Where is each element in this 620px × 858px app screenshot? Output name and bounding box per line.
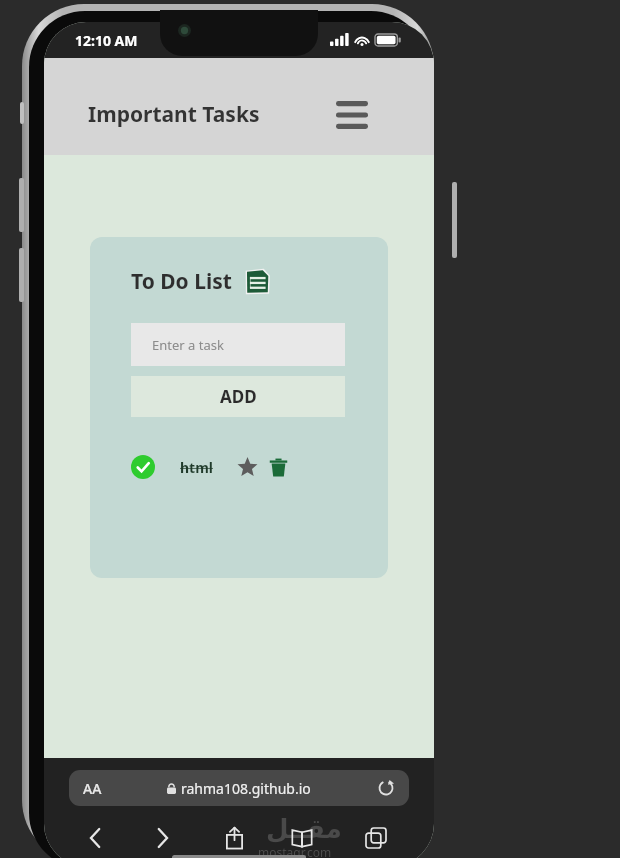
button[interactable]: ADD	[131, 376, 345, 417]
button[interactable]: Menu	[332, 95, 372, 135]
button[interactable]: Forward	[142, 818, 182, 858]
staticText: مقــل	[266, 814, 342, 844]
button[interactable]: Share	[214, 818, 254, 858]
staticText: Enter a task	[152, 336, 224, 354]
staticText: rahma108.github.io	[181, 779, 311, 798]
button[interactable]: Mark complete	[131, 455, 155, 479]
button[interactable]: Favourite	[235, 455, 259, 479]
staticText: mostaqr.com	[258, 844, 332, 858]
staticText: ADD	[220, 385, 257, 408]
staticText: 12:10 AM	[75, 31, 138, 50]
button[interactable]: Delete task	[266, 455, 290, 479]
button[interactable]: Enter a task	[131, 323, 345, 366]
button[interactable]: Back	[76, 818, 116, 858]
button[interactable]: Bookmarks	[282, 818, 322, 858]
button[interactable]: AA	[69, 770, 409, 806]
staticText: html	[180, 458, 213, 477]
staticText: AA	[83, 779, 102, 798]
staticText: Important Tasks	[88, 100, 260, 129]
button[interactable]: Reload	[373, 775, 399, 801]
staticText: To Do List	[131, 267, 232, 296]
button[interactable]: Tabs	[356, 818, 396, 858]
